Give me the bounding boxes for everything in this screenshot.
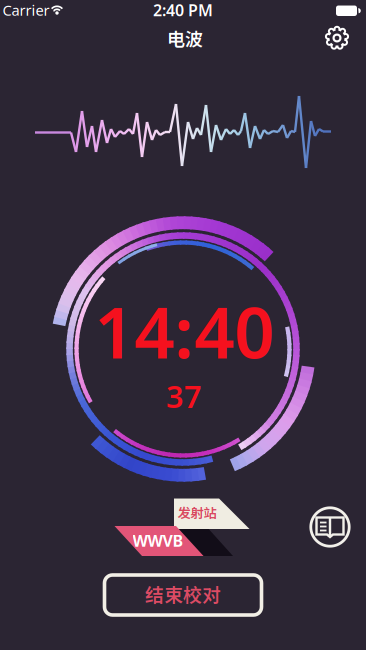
staticText: 14:40 <box>94 284 274 378</box>
staticText: 电波 <box>167 28 203 50</box>
staticText: 37 <box>166 376 202 416</box>
staticText: 发射站 <box>177 505 216 521</box>
staticText: 结束校对 <box>145 584 221 606</box>
button[interactable]: Log <box>307 504 353 550</box>
staticText: WWVB <box>132 530 183 551</box>
button[interactable]: Settings <box>317 18 357 58</box>
button[interactable]: 结束校对 <box>104 575 261 615</box>
staticText: Carrier <box>2 0 49 20</box>
staticText: 2:40 PM <box>153 0 213 21</box>
